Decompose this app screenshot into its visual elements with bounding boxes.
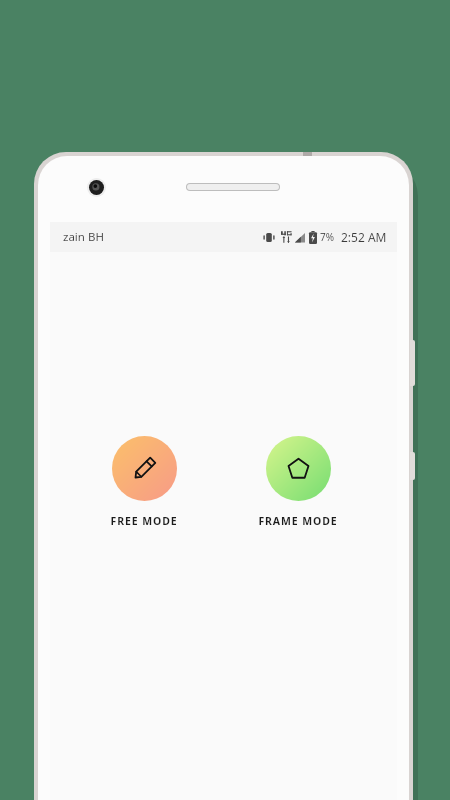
- staticText: 2:52 AM: [341, 229, 387, 245]
- button[interactable]: Frame mode: [254, 436, 342, 528]
- staticText: zain BH: [63, 229, 104, 245]
- staticText: FREE MODE: [110, 514, 178, 528]
- button[interactable]: Free mode: [106, 436, 182, 528]
- staticText: FRAME MODE: [258, 514, 338, 528]
- staticText: 7%: [320, 230, 335, 244]
